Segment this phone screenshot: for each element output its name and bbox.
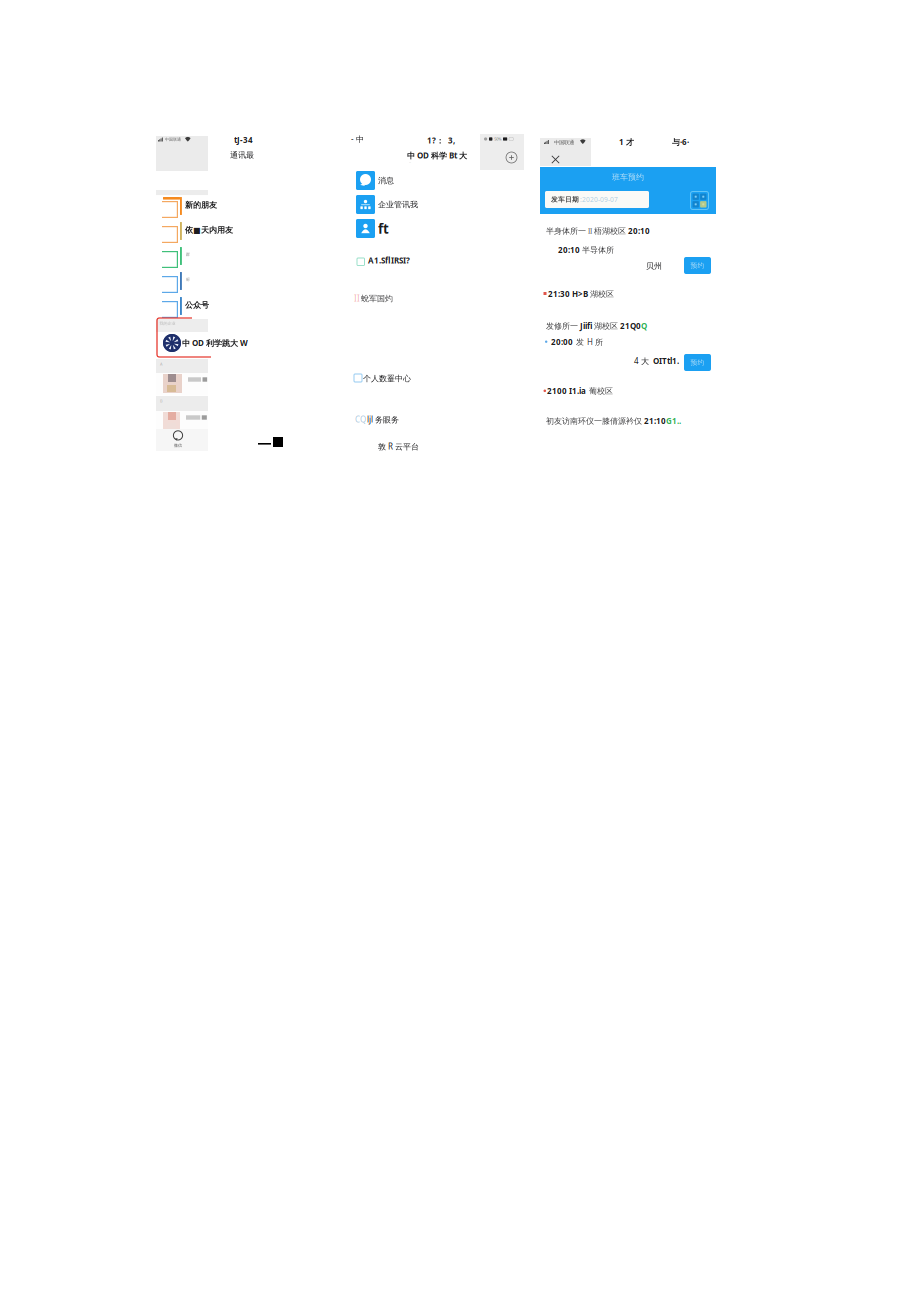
staticText: - 中: [351, 134, 364, 144]
staticText: 发修所一: [546, 321, 580, 331]
button[interactable]: 微信: [172, 430, 184, 441]
staticText: 半身体所一: [546, 226, 586, 236]
staticText: Jiifi: [580, 321, 594, 331]
staticText: CQ: [355, 414, 366, 425]
staticText: 2100 I1.ia: [547, 386, 586, 396]
staticText: 半导体所: [582, 245, 614, 255]
staticText: tJ-34: [234, 135, 253, 145]
button[interactable]: Scan QR code: [690, 191, 709, 210]
staticText: 1?： 3,: [427, 135, 455, 146]
staticText: ljl 务眼务: [367, 414, 399, 425]
staticText: II: [586, 227, 594, 235]
staticText: H>B: [572, 289, 588, 299]
button[interactable]: 发车日期: [545, 191, 649, 208]
staticText: 班车预约: [612, 172, 644, 182]
staticText: ft: [378, 220, 389, 237]
button[interactable]: 我的企业: [163, 334, 181, 352]
staticText: 消息: [378, 176, 394, 185]
staticText: 21Q0: [620, 321, 641, 331]
button[interactable]: ft: [356, 219, 375, 238]
staticText: ..: [409, 159, 411, 164]
staticText: 通讯最: [230, 150, 254, 160]
staticText: 20:10: [628, 226, 650, 236]
staticText: 预约: [690, 358, 704, 367]
staticText: B: [160, 398, 163, 404]
staticText: 中 OD 利学跳大 W: [182, 338, 248, 348]
staticText: 21:10: [644, 416, 666, 426]
staticText: OITtl1.: [653, 356, 679, 366]
staticText: 50%: [494, 136, 501, 142]
staticText: 20:00: [551, 337, 573, 347]
staticText: 标: [186, 277, 190, 282]
staticText: Q: [641, 321, 647, 331]
button[interactable]: Close: [551, 155, 560, 164]
staticText: 公众号: [185, 300, 209, 310]
staticText: 群: [186, 252, 190, 257]
staticText: 与·6·: [672, 137, 689, 147]
button[interactable]: Add: [506, 152, 517, 163]
staticText: 葡校区: [589, 386, 613, 396]
staticText: 新的朋友: [185, 200, 217, 210]
button[interactable]: 消息: [356, 171, 375, 190]
button[interactable]: 预约: [684, 354, 711, 371]
staticText: 中国联通: [165, 137, 181, 142]
staticText: 企业管讯我: [378, 200, 418, 209]
staticText: 21:30: [548, 289, 570, 299]
staticText: A: [160, 361, 163, 367]
staticText: 中国联通: [554, 139, 574, 146]
button[interactable]: 预约: [684, 257, 711, 274]
staticText: 初友访南环仪一膝倩源衿仅: [546, 416, 644, 426]
staticText: 发: [576, 337, 584, 347]
staticText: G1..: [666, 416, 681, 426]
staticText: II: [354, 293, 360, 304]
staticText: 预约: [690, 261, 704, 270]
staticText: 20:10: [558, 245, 580, 255]
staticText: 我的企业: [159, 321, 175, 326]
staticText: 敦 R 云平台: [378, 441, 419, 452]
staticText: 梧湖校区: [594, 226, 628, 236]
staticText: :2020-09-07: [580, 195, 618, 204]
button[interactable]: 企业管讯我: [356, 195, 375, 214]
staticText: A1.SflIRSI?: [368, 255, 410, 266]
staticText: 蛻军国灼: [361, 294, 393, 303]
staticText: 4 大: [634, 356, 649, 366]
staticText: 湖校区: [590, 289, 614, 299]
staticText: 依■天内用友: [185, 225, 233, 235]
staticText: 1 才: [619, 137, 634, 147]
staticText: 中 OD 科学 Bt 大: [407, 150, 467, 161]
staticText: 微信: [174, 443, 182, 448]
staticText: 湖校区: [594, 321, 620, 331]
staticText: 贝州: [646, 261, 662, 271]
staticText: H 所: [587, 337, 603, 347]
staticText: 个人数罿中心: [363, 374, 411, 383]
staticText: 发车日期: [551, 195, 579, 204]
